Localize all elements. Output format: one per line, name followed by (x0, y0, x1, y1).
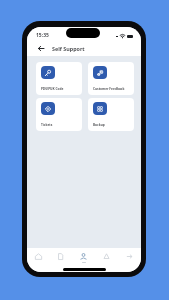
button[interactable]: Home (27, 248, 49, 264)
staticText: Backup (93, 123, 105, 127)
button[interactable]: PIN/PUK Code (36, 62, 82, 95)
button[interactable]: Profile (72, 248, 95, 264)
staticText: 15:35 (36, 32, 49, 39)
staticText: Customer Feedback (93, 87, 125, 91)
button[interactable]: Backup (88, 98, 134, 131)
button[interactable]: Customer Feedback (88, 62, 134, 95)
staticText: PIN/PUK Code (41, 87, 64, 91)
staticText: Tickets (41, 123, 53, 127)
button[interactable]: Back (35, 43, 46, 54)
button[interactable]: Notifications (95, 248, 118, 264)
button[interactable]: Tickets (36, 98, 82, 131)
staticText: Self Support (52, 45, 85, 52)
button[interactable]: Logout (118, 248, 141, 264)
button[interactable]: Documents (49, 248, 72, 264)
